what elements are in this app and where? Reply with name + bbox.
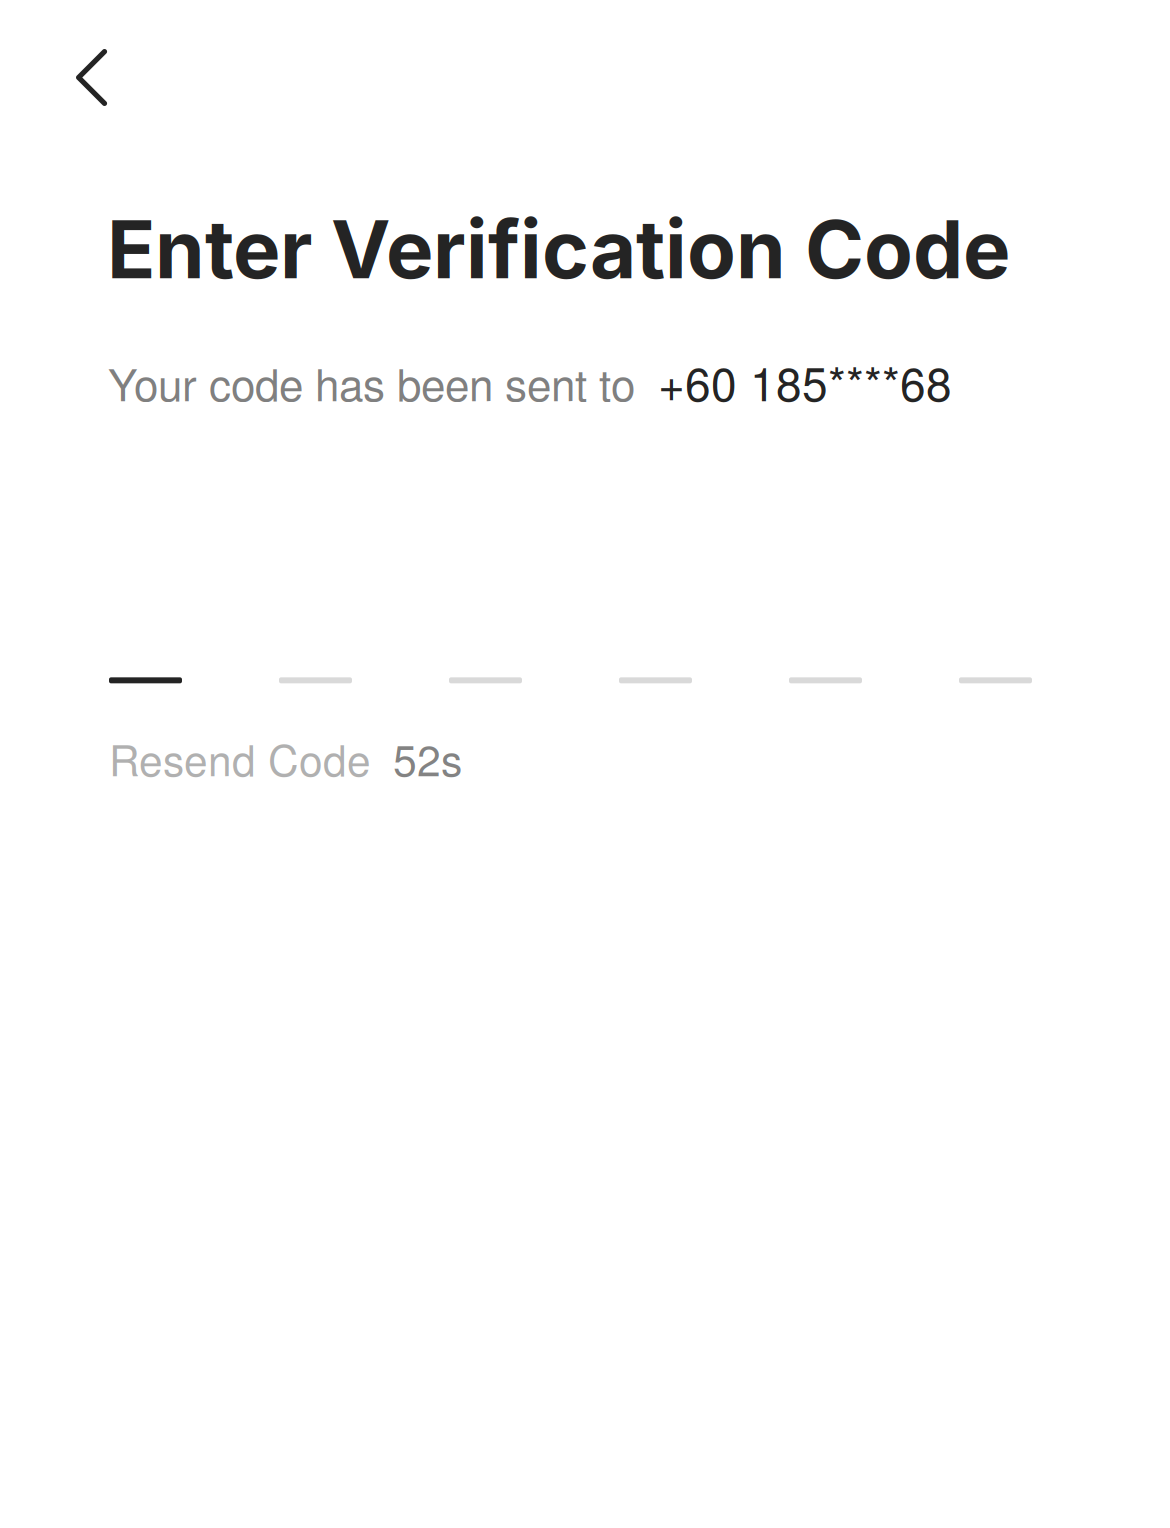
staticText: Your code has been sent to: [108, 351, 635, 414]
staticText: Resend Code: [109, 728, 371, 788]
button[interactable]: Back: [0, 0, 137, 132]
staticText: 52s: [393, 727, 462, 788]
button[interactable]: Resend Code: [0, 727, 462, 788]
staticText: Enter Verification Code: [107, 201, 1010, 297]
staticText: +60 185****68: [658, 348, 952, 414]
